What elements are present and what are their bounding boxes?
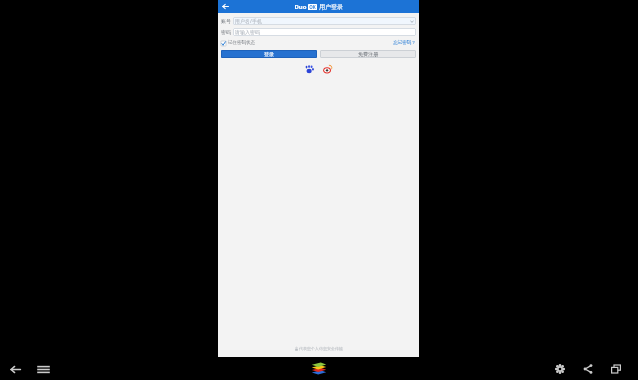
staticText: 用户名/手机 (235, 18, 262, 25)
button[interactable]: Settings (551, 360, 569, 378)
button[interactable]: 用户名/手机 (233, 17, 416, 25)
staticText: 忘记密码？ (393, 40, 416, 46)
button[interactable]: BlueStacks Home (308, 359, 330, 379)
staticText: 免费注册 (358, 51, 378, 57)
button[interactable]: Menu (34, 360, 52, 378)
staticText: 账号 (221, 18, 231, 24)
staticText: 用户登录 (319, 3, 343, 11)
button[interactable]: 免费注册 (320, 50, 416, 58)
button[interactable]: Share (579, 360, 597, 378)
button[interactable]: 登录 (221, 50, 317, 58)
button[interactable]: Sign in with Baidu (304, 64, 315, 75)
button[interactable]: 请输入密码 (233, 28, 416, 36)
staticText: 记住密码状态 (228, 40, 255, 46)
staticText: 登录 (264, 51, 274, 57)
staticText: Duo (294, 3, 307, 11)
staticText: 代表您个人信息安全传输 (299, 346, 343, 351)
staticText: 请输入密码 (235, 29, 260, 35)
button[interactable]: Back (6, 360, 24, 378)
staticText: OK (309, 4, 316, 10)
button[interactable]: Sign in with Weibo (322, 64, 333, 75)
button[interactable]: 记住密码状态 (221, 40, 255, 46)
button[interactable]: 忘记密码？ (393, 40, 416, 46)
button[interactable]: Back (218, 0, 233, 13)
button[interactable]: Multi instance (607, 360, 625, 378)
staticText: 密码 (221, 29, 231, 35)
